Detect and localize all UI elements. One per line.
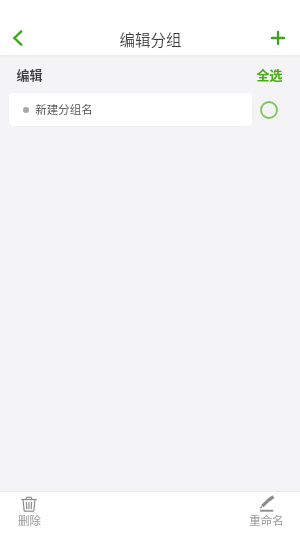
button[interactable]: Select group xyxy=(253,92,284,127)
button[interactable]: Back xyxy=(0,18,38,58)
staticText: 新建分组名 xyxy=(35,101,93,118)
staticText: 全选 xyxy=(256,65,283,84)
button[interactable]: 删除 xyxy=(9,492,49,533)
button[interactable]: Add group xyxy=(258,18,298,58)
button[interactable]: 新建分组名 xyxy=(8,92,253,127)
staticText: 编辑 xyxy=(16,65,43,84)
button[interactable]: 重命名 xyxy=(246,492,286,533)
staticText: 删除 xyxy=(18,512,41,529)
staticText: 重命名 xyxy=(249,512,284,529)
button[interactable]: 全选 xyxy=(256,65,283,84)
staticText: 编辑分组 xyxy=(119,28,182,50)
